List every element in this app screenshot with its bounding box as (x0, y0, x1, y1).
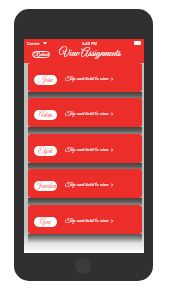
staticText: Tap and hold to view (65, 75, 109, 83)
button[interactable]: John (28, 63, 142, 92)
staticText: Tap and hold to view (65, 110, 109, 118)
staticText: Jonathan (34, 182, 57, 191)
staticText: Restart (33, 51, 49, 58)
staticText: 4:40 PM (82, 41, 98, 46)
staticText: Carrier (27, 41, 41, 46)
staticText: Adam (39, 111, 53, 120)
staticText: Tap and hold to view (65, 146, 109, 154)
button[interactable]: Elijah (28, 134, 142, 163)
staticText: Tap and hold to view (65, 217, 109, 225)
button[interactable]: Jonathan (28, 169, 142, 198)
staticText: Elijah (38, 147, 53, 156)
staticText: Tap and hold to view (65, 181, 109, 189)
staticText: View Assignments (59, 47, 121, 60)
button[interactable]: Restart (32, 51, 50, 58)
staticText: Ajon (40, 218, 51, 227)
button[interactable]: Home (75, 258, 91, 274)
staticText: John (39, 76, 53, 85)
button[interactable]: Adam (28, 98, 142, 127)
button[interactable]: Ajon (28, 205, 142, 234)
